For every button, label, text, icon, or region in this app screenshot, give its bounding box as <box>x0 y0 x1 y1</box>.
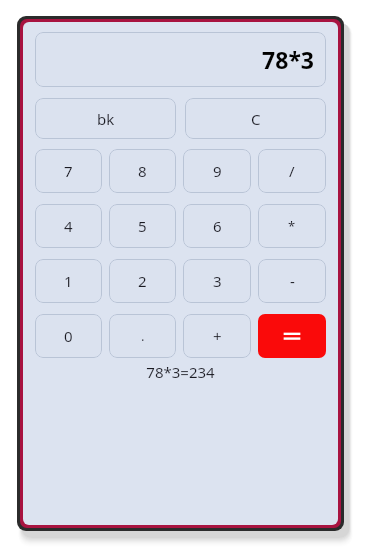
staticText: 9 <box>213 161 222 181</box>
button[interactable]: 4 <box>35 204 102 248</box>
button[interactable]: 5 <box>109 204 176 248</box>
staticText: 7 <box>64 161 73 181</box>
button[interactable]: C <box>185 98 326 139</box>
staticText: 1 <box>64 271 73 291</box>
staticText: * <box>288 217 296 235</box>
button[interactable]: 7 <box>35 149 102 193</box>
staticText: + <box>213 326 222 346</box>
button[interactable]: 0 <box>35 314 102 358</box>
staticText: bk <box>97 109 115 129</box>
button[interactable]: . <box>109 314 176 358</box>
button[interactable]: 8 <box>109 149 176 193</box>
staticText: 78*3 <box>262 44 314 75</box>
button[interactable]: 2 <box>109 259 176 303</box>
staticText: - <box>290 271 295 291</box>
button[interactable]: 1 <box>35 259 102 303</box>
button[interactable]: 78*3 <box>35 32 326 87</box>
button[interactable]: Equals <box>258 314 326 358</box>
staticText: 4 <box>64 216 73 236</box>
button[interactable]: 3 <box>183 259 251 303</box>
button[interactable]: 9 <box>183 149 251 193</box>
button[interactable]: + <box>183 314 251 358</box>
staticText: C <box>251 109 261 129</box>
staticText: . <box>141 327 145 345</box>
staticText: 5 <box>138 216 147 236</box>
staticText: 0 <box>64 326 73 346</box>
button[interactable]: / <box>258 149 326 193</box>
staticText: 78*3=234 <box>146 362 215 382</box>
staticText: 2 <box>138 271 147 291</box>
staticText: 8 <box>138 161 147 181</box>
button[interactable]: bk <box>35 98 176 139</box>
staticText: 6 <box>213 216 222 236</box>
button[interactable]: * <box>258 204 326 248</box>
button[interactable]: 6 <box>183 204 251 248</box>
staticText: 3 <box>213 271 222 291</box>
button[interactable]: - <box>258 259 326 303</box>
staticText: / <box>289 161 295 181</box>
